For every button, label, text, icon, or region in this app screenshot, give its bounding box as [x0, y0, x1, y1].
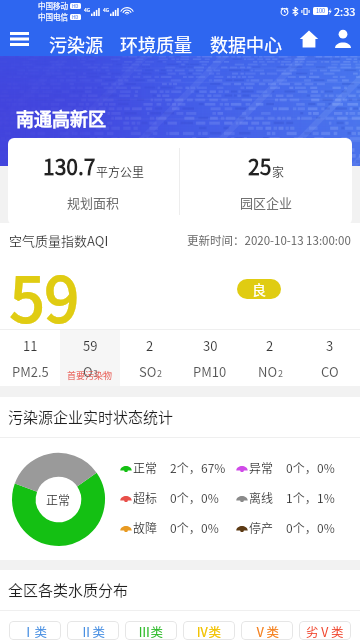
button[interactable]: 2	[240, 330, 300, 386]
staticText: 59	[10, 250, 79, 329]
button[interactable]: Ⅳ类	[183, 621, 235, 640]
button[interactable]: Ⅴ类	[241, 621, 293, 640]
button[interactable]: 污染源	[49, 22, 103, 56]
staticText: 良	[252, 279, 266, 299]
staticText: 4G	[103, 6, 110, 13]
button[interactable]: 25	[180, 138, 352, 225]
staticText: 0%	[317, 459, 335, 476]
staticText: PM10	[193, 362, 227, 381]
staticText: Ⅳ类	[196, 622, 222, 640]
staticText: 1%	[317, 489, 335, 506]
staticText: 平方公里	[96, 163, 145, 180]
staticText: 3	[326, 336, 334, 355]
button[interactable]: Profile	[326, 22, 360, 56]
staticText: 正常	[133, 459, 158, 476]
staticText: 南通高新区	[16, 105, 106, 131]
staticText: 100	[316, 7, 326, 15]
staticText: PM2.5	[12, 362, 49, 381]
staticText: 规划面积	[67, 193, 120, 212]
staticText: 67%	[201, 459, 226, 476]
staticText: O	[83, 362, 93, 381]
staticText: HD	[72, 3, 79, 9]
staticText: 环境质量	[120, 31, 192, 57]
button[interactable]: 数据中心	[210, 22, 282, 56]
button[interactable]: 59	[60, 330, 120, 386]
staticText: 0个，	[286, 459, 317, 476]
button[interactable]: Ⅲ类	[125, 621, 177, 640]
button[interactable]: 劣Ⅴ类	[299, 621, 351, 640]
staticText: 2	[146, 336, 154, 355]
staticText: 超标	[133, 489, 158, 506]
staticText: 0%	[201, 489, 219, 506]
staticText: 污染源企业实时状态统计	[8, 406, 174, 428]
staticText: 首要污染物	[67, 369, 113, 382]
staticText: 0%	[201, 519, 219, 536]
staticText: CO	[321, 362, 339, 381]
button[interactable]: 130.7	[8, 138, 179, 225]
button[interactable]: Menu	[0, 22, 38, 56]
staticText: 0个，	[170, 489, 201, 506]
staticText: 2	[278, 367, 283, 380]
button[interactable]: 3	[300, 330, 360, 386]
staticText: 30	[203, 336, 218, 355]
staticText: 污染源	[49, 31, 103, 57]
staticText: 正常	[46, 491, 71, 508]
staticText: 2:33	[334, 3, 356, 19]
staticText: Ⅴ类	[254, 622, 280, 640]
staticText: 130.7	[43, 151, 96, 181]
staticText: 3	[93, 367, 98, 380]
staticText: 1个，	[286, 489, 317, 506]
staticText: 0个，	[286, 519, 317, 536]
staticText: 中国电信	[38, 11, 68, 22]
staticText: 离线	[249, 489, 274, 506]
button[interactable]: 良	[237, 279, 281, 299]
staticText: 中国移动	[38, 0, 68, 11]
staticText: 园区企业	[240, 193, 293, 212]
staticText: 11	[23, 336, 38, 355]
staticText: Ⅲ类	[138, 622, 164, 640]
staticText: 2	[157, 367, 162, 380]
staticText: Ⅱ类	[80, 622, 106, 640]
staticText: 数据中心	[210, 31, 282, 57]
staticText: 停产	[249, 519, 274, 536]
staticText: Ⅰ类	[22, 622, 48, 640]
staticText: 0%	[317, 519, 335, 536]
staticText: 全区各类水质分布	[8, 579, 129, 601]
staticText: 2	[266, 336, 274, 355]
button[interactable]: 2	[120, 330, 180, 386]
staticText: 异常	[249, 459, 274, 476]
staticText: 59	[83, 336, 98, 355]
staticText: 空气质量指数AQI	[9, 231, 109, 250]
staticText: HD	[72, 14, 79, 20]
staticText: 更新时间：2020-10-13 13:00:00	[187, 232, 351, 249]
staticText: 25	[248, 151, 272, 181]
staticText: 0个，	[170, 519, 201, 536]
staticText: 家	[272, 163, 285, 180]
staticText: 故障	[133, 519, 158, 536]
staticText: 4G	[84, 6, 91, 13]
staticText: NO	[258, 362, 278, 381]
staticText: 2个，	[170, 459, 201, 476]
staticText: SO	[139, 362, 157, 381]
button[interactable]: Home	[292, 22, 326, 56]
button[interactable]: Ⅰ类	[9, 621, 61, 640]
button[interactable]: 30	[180, 330, 240, 386]
staticText: 劣Ⅴ类	[306, 622, 344, 640]
button[interactable]: 环境质量	[120, 22, 192, 56]
button[interactable]: 11	[0, 330, 60, 386]
button[interactable]: Ⅱ类	[67, 621, 119, 640]
